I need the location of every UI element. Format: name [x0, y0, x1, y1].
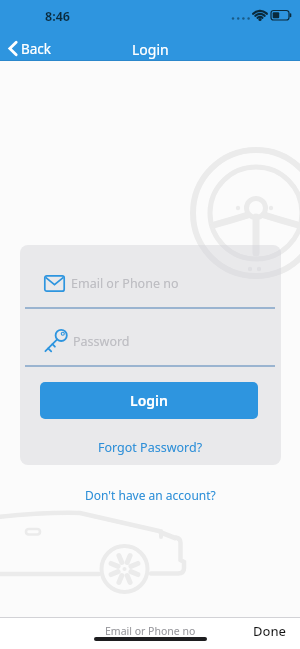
staticText: Back [21, 40, 52, 58]
button[interactable]: Login [40, 382, 258, 419]
staticText: 8:46 [45, 8, 70, 25]
button[interactable]: Don't have an account? [85, 487, 216, 503]
staticText: Email or Phone no [71, 275, 179, 292]
button[interactable]: Email or Phone no [25, 263, 275, 303]
button[interactable]: Password [25, 321, 275, 361]
staticText: Login [130, 391, 168, 410]
staticText: Email or Phone no [105, 624, 196, 638]
button[interactable]: Forgot Password? [98, 439, 203, 456]
staticText: Password [73, 333, 130, 350]
staticText: Login [132, 40, 169, 59]
button[interactable]: Done [253, 622, 300, 640]
button[interactable]: Back [4, 39, 58, 58]
staticText: Done [253, 622, 287, 640]
